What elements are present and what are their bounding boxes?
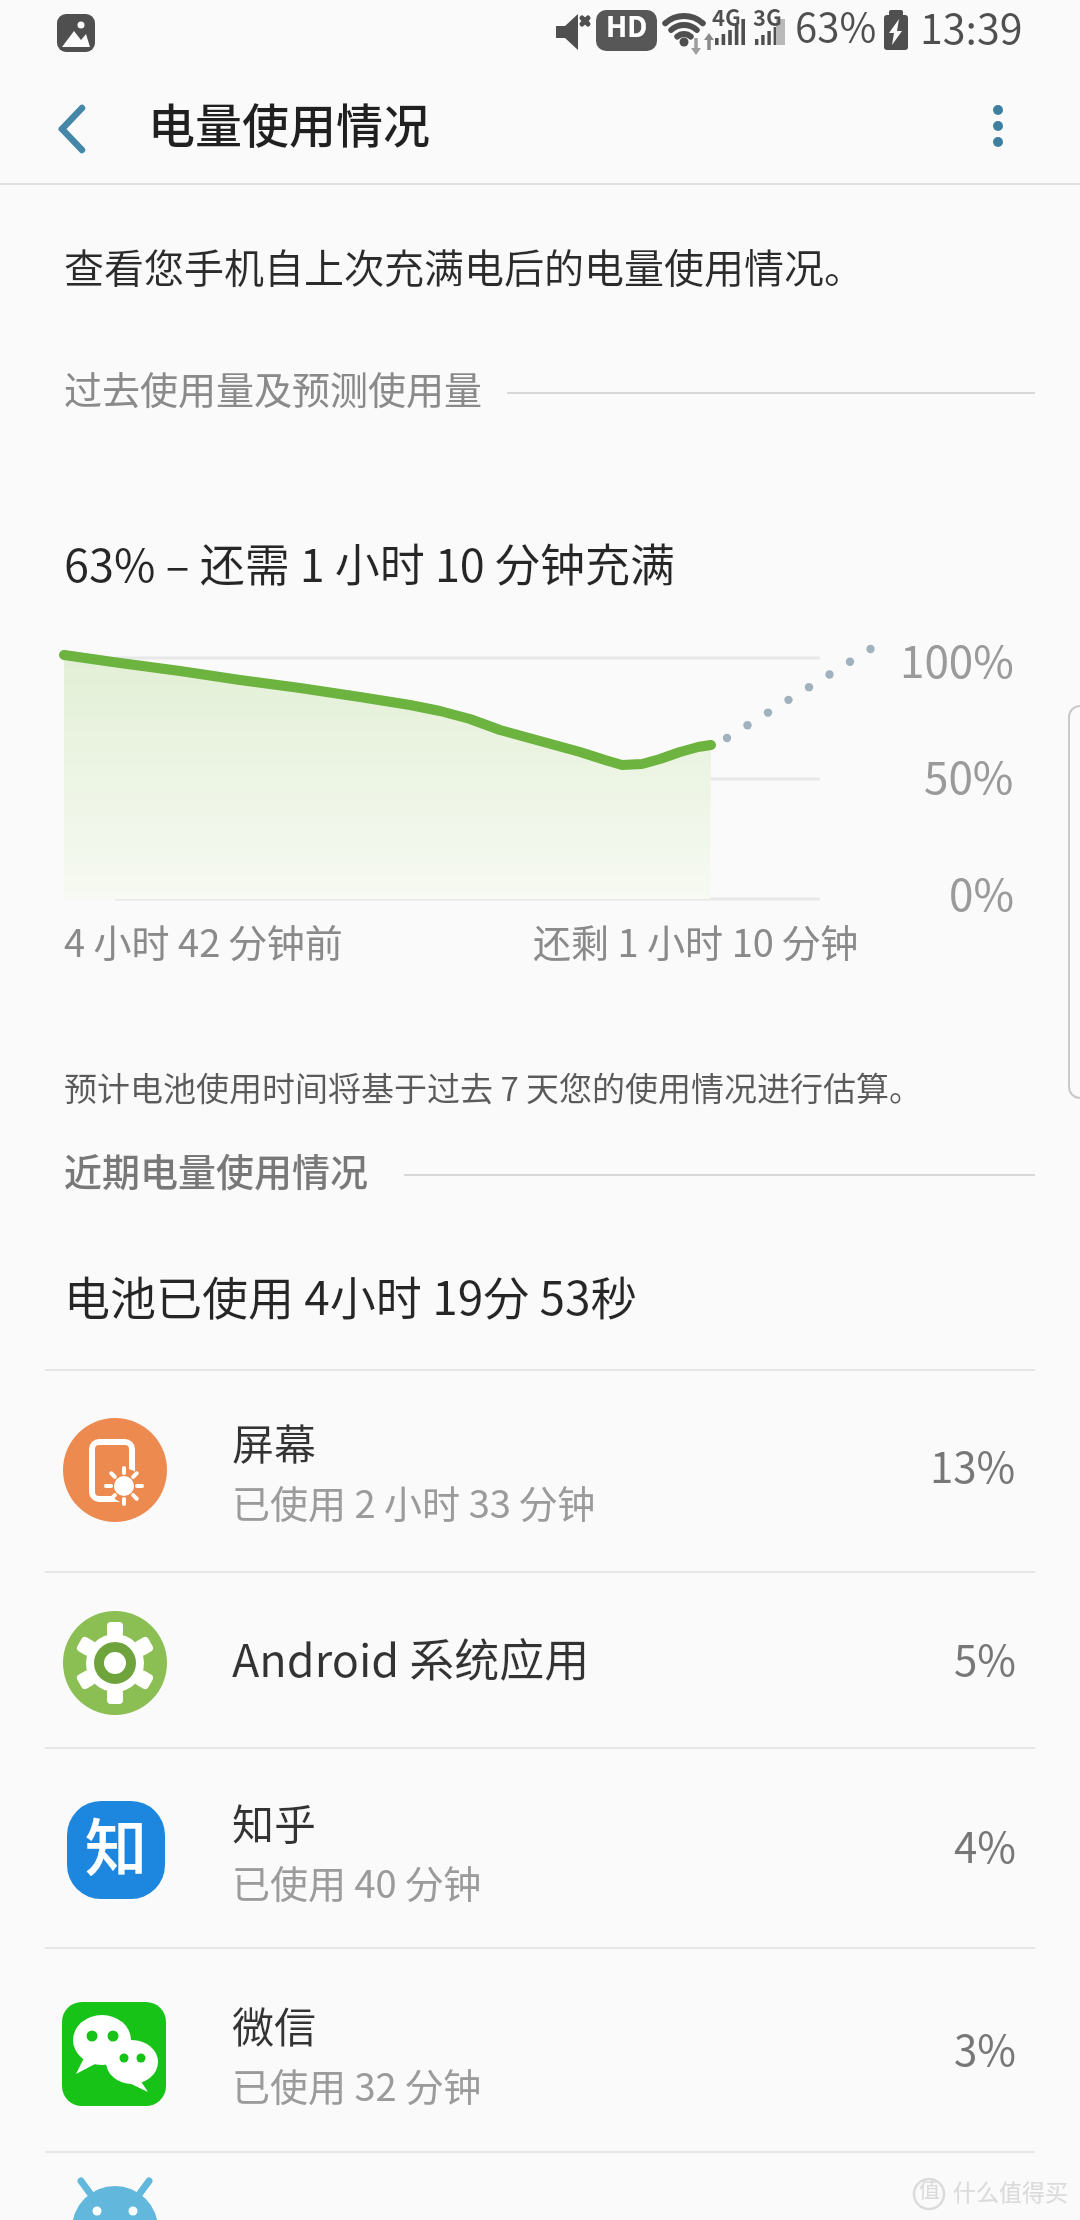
staticText: 4% [954,1814,1016,1875]
staticText: 4G [712,0,741,32]
staticText: 3G [753,0,782,32]
button[interactable] [45,1948,1035,2152]
staticText: 屏幕 [232,1411,317,1472]
staticText: 还剩 1 小时 10 分钟 [533,913,859,968]
staticText: 近期电量使用情况 [64,1142,369,1197]
staticText: 过去使用量及预测使用量 [64,360,483,415]
staticText: 5% [954,1627,1016,1688]
staticText: 微信 [232,1994,317,2055]
staticText: 3% [954,2017,1016,2078]
staticText: Android 系统应用 [232,1625,590,1690]
staticText: 电池已使用 4小时 19分 53秒 [64,1262,637,1329]
button[interactable] [958,85,1038,165]
staticText: 13:39 [920,0,1023,55]
button[interactable] [45,2152,1035,2220]
staticText: 4 小时 42 分钟前 [64,913,343,968]
staticText: 预计电池使用时间将基于过去 7 天您的使用情况进行估算。 [64,1063,923,1111]
staticText: 63% [795,0,877,54]
staticText: 什么值得买 [953,2174,1068,2207]
staticText: 值 [919,2173,940,2203]
button[interactable] [45,1572,1035,1748]
staticText: 已使用 2 小时 33 分钟 [232,1474,596,1529]
button[interactable] [45,1748,1035,1948]
staticText: 100% [900,627,1014,691]
staticText: 知 [85,1799,148,1889]
staticText: 已使用 40 分钟 [232,1854,482,1909]
staticText: 已使用 32 分钟 [232,2057,482,2112]
staticText: 查看您手机自上次充满电后的电量使用情况。 [64,237,864,295]
staticText: 电量使用情况 [148,88,430,156]
staticText: 63% – 还需 1 小时 10 分钟充满 [64,530,675,595]
staticText: 50% [924,743,1014,807]
staticText: 13% [930,1434,1016,1495]
staticText: 0% [949,860,1014,924]
button[interactable] [45,1370,1035,1572]
button[interactable] [40,90,110,162]
staticText: HD [606,5,648,46]
staticText: 知乎 [232,1791,317,1852]
